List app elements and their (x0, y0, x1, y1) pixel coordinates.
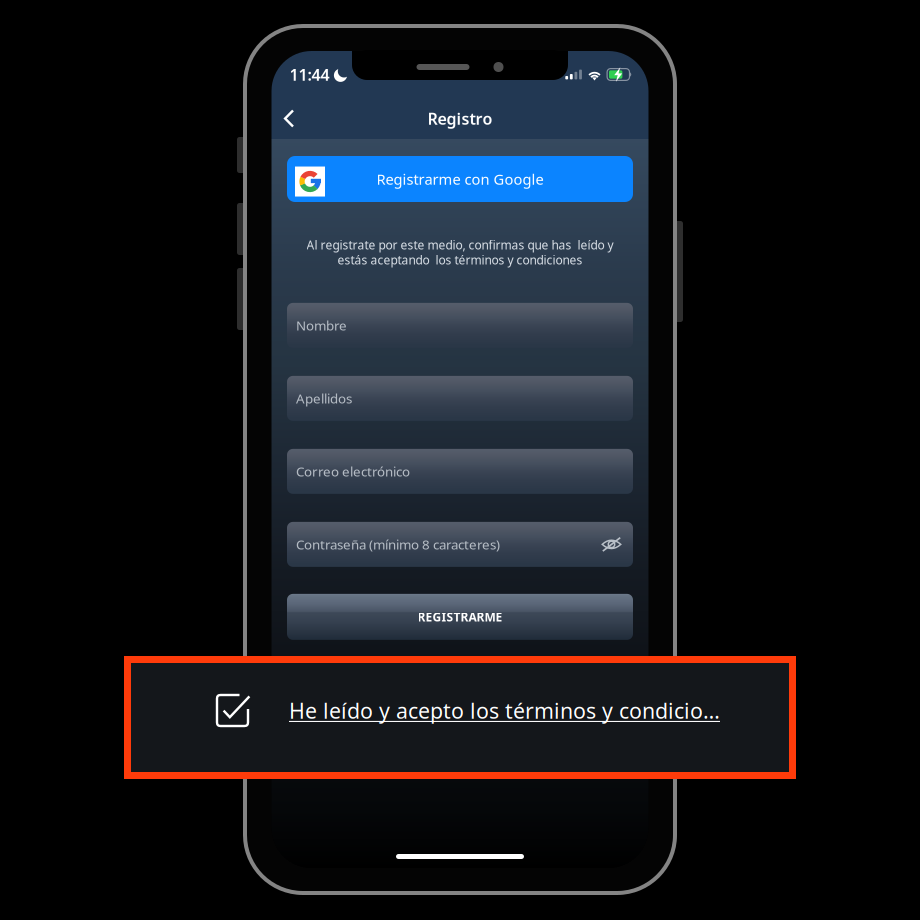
staticText: Nombre (296, 316, 347, 334)
staticText: Registrarme con Google (376, 169, 543, 189)
button[interactable]: Registrarme con Google (287, 156, 633, 202)
button[interactable]: Contraseña (mínimo 8 caracteres) (287, 522, 633, 567)
staticText: estás aceptando los términos y condicion… (337, 252, 582, 268)
button[interactable]: REGISTRARME (287, 594, 633, 640)
staticText: Apellidos (296, 389, 352, 407)
button[interactable]: Back (271, 97, 306, 140)
staticText: He leído y acepto los términos y condici… (289, 696, 720, 725)
staticText: Registro (427, 108, 492, 129)
button[interactable]: Apellidos (287, 376, 633, 421)
button[interactable]: Nombre (287, 303, 633, 348)
staticText: REGISTRARME (417, 609, 502, 625)
button[interactable]: He leído y acepto los términos y condici… (124, 656, 796, 779)
button[interactable]: Correo electrónico (287, 449, 633, 494)
staticText: Correo electrónico (296, 462, 410, 480)
staticText: Contraseña (mínimo 8 caracteres) (296, 535, 500, 553)
staticText: Al registrate por este medio, confirmas … (306, 237, 613, 253)
staticText: 11:44 (289, 64, 329, 85)
